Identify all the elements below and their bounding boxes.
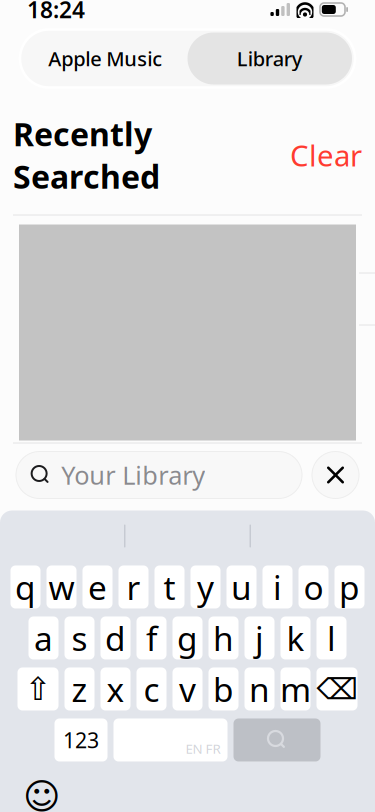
staticText: q: [15, 565, 36, 609]
button[interactable]: Search: [233, 718, 320, 761]
button[interactable]: c: [136, 667, 166, 710]
staticText: y: [197, 565, 214, 609]
staticText: g: [177, 616, 198, 660]
staticText: r: [126, 565, 140, 609]
staticText: EN FR: [185, 740, 220, 757]
button[interactable]: l: [316, 616, 346, 659]
staticText: h: [213, 616, 234, 660]
staticText: 18:24: [27, 0, 85, 25]
button[interactable]: g: [172, 616, 202, 659]
button[interactable]: e: [82, 565, 112, 608]
button[interactable]: q: [10, 565, 40, 608]
button[interactable]: b: [208, 667, 238, 710]
staticText: e: [88, 565, 107, 609]
staticText: b: [213, 667, 234, 711]
button[interactable]: k: [280, 616, 310, 659]
staticText: i: [273, 565, 282, 609]
staticText: Recently Searched: [13, 112, 160, 197]
staticText: j: [255, 616, 264, 660]
button[interactable]: y: [190, 565, 220, 608]
button[interactable]: Clear: [290, 135, 362, 174]
staticText: s: [71, 616, 87, 660]
button[interactable]: p: [334, 565, 364, 608]
button[interactable]: d: [100, 616, 130, 659]
staticText: Apple Music: [48, 45, 162, 72]
button[interactable]: a: [28, 616, 58, 659]
staticText: t: [163, 565, 175, 609]
button[interactable]: z: [64, 667, 94, 710]
staticText: u: [231, 565, 252, 609]
staticText: v: [179, 667, 196, 711]
staticText: Library: [237, 45, 303, 72]
staticText: ☺: [23, 776, 61, 812]
button[interactable]: n: [244, 667, 274, 710]
staticText: l: [327, 616, 336, 660]
staticText: k: [286, 616, 304, 660]
button[interactable]: m: [280, 667, 310, 710]
button[interactable]: h: [208, 616, 238, 659]
staticText: m: [280, 667, 311, 711]
button[interactable]: w: [46, 565, 76, 608]
staticText: n: [249, 667, 270, 711]
staticText: 123: [63, 726, 99, 754]
button[interactable]: t: [154, 565, 184, 608]
button[interactable]: o: [298, 565, 328, 608]
button[interactable]: 123: [54, 718, 107, 761]
staticText: ⇧: [24, 671, 51, 707]
button[interactable]: f: [136, 616, 166, 659]
button[interactable]: Emoji: [20, 774, 64, 812]
button[interactable]: x: [100, 667, 130, 710]
button[interactable]: j: [244, 616, 274, 659]
button[interactable]: Shift: [17, 667, 58, 710]
button[interactable]: Cancel search: [312, 451, 359, 498]
staticText: a: [34, 616, 53, 660]
button[interactable]: Delete: [316, 667, 357, 710]
staticText: x: [106, 667, 124, 711]
button[interactable]: Apple Music: [23, 32, 187, 84]
staticText: p: [339, 565, 360, 609]
staticText: c: [143, 667, 159, 711]
button[interactable]: Your Library: [16, 451, 302, 498]
button[interactable]: r: [118, 565, 148, 608]
staticText: o: [303, 565, 323, 609]
staticText: Clear: [290, 135, 362, 174]
staticText: Your Library: [61, 458, 205, 492]
staticText: w: [48, 565, 74, 609]
staticText: z: [71, 667, 87, 711]
button[interactable]: s: [64, 616, 94, 659]
staticText: ⌫: [316, 672, 357, 706]
staticText: d: [105, 616, 126, 660]
button[interactable]: v: [172, 667, 202, 710]
button[interactable]: u: [226, 565, 256, 608]
button[interactable]: Library: [187, 32, 352, 84]
button[interactable]: i: [262, 565, 292, 608]
staticText: f: [146, 616, 157, 660]
button[interactable]: space: [113, 718, 227, 761]
